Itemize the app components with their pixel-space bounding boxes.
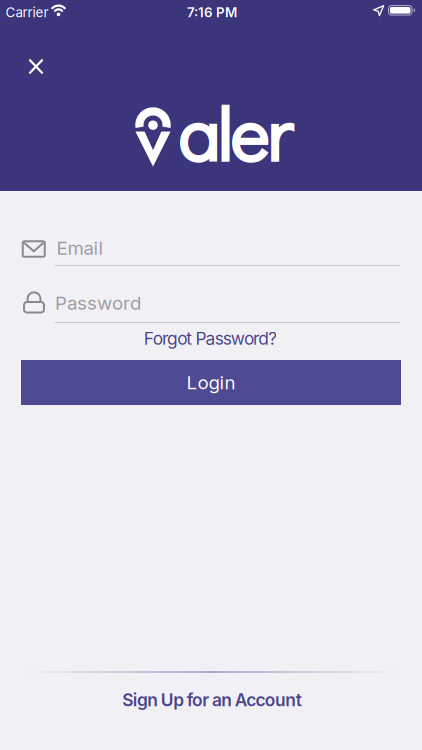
staticText: Carrier xyxy=(5,5,48,20)
staticText: Sign Up for an Account xyxy=(122,690,302,710)
staticText: Forgot Password? xyxy=(144,328,277,349)
staticText: aler xyxy=(177,85,291,181)
staticText: 7:16 PM xyxy=(187,5,237,20)
staticText: Email xyxy=(56,237,103,259)
button[interactable]: Forgot Password? xyxy=(144,328,277,349)
staticText: Password xyxy=(55,292,141,314)
button[interactable]: Sign Up for an Account xyxy=(122,690,302,710)
button[interactable]: Password xyxy=(20,287,400,324)
button[interactable]: Close xyxy=(22,52,50,81)
button[interactable]: Login xyxy=(21,360,401,405)
staticText: Login xyxy=(186,371,235,393)
button[interactable]: Email xyxy=(20,234,400,266)
